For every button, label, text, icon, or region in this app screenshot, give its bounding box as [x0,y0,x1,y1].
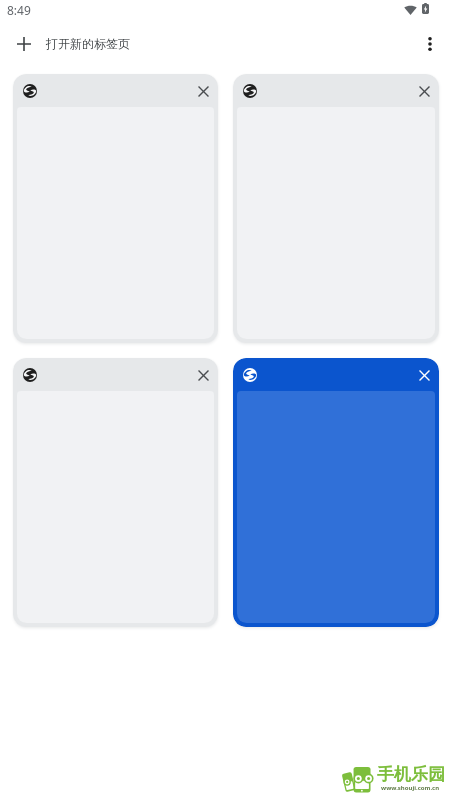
button[interactable]: Close tab [190,78,216,104]
button[interactable]: More options [413,27,447,61]
staticText: 8:49 [7,2,31,18]
button[interactable]: Close tab [190,362,216,388]
button[interactable]: Close tab [13,74,218,343]
button[interactable]: Close tab [411,78,437,104]
button[interactable]: New tab [5,25,42,62]
button[interactable]: Close tab [13,358,218,627]
staticText: www.shouji.com.cn [381,784,440,792]
staticText: 打开新的标签页 [46,36,130,51]
button[interactable]: Close tab [233,74,439,343]
button[interactable]: Close tab [411,362,437,388]
button[interactable]: Close tab [233,358,439,627]
staticText: 手机乐园 [377,764,445,785]
